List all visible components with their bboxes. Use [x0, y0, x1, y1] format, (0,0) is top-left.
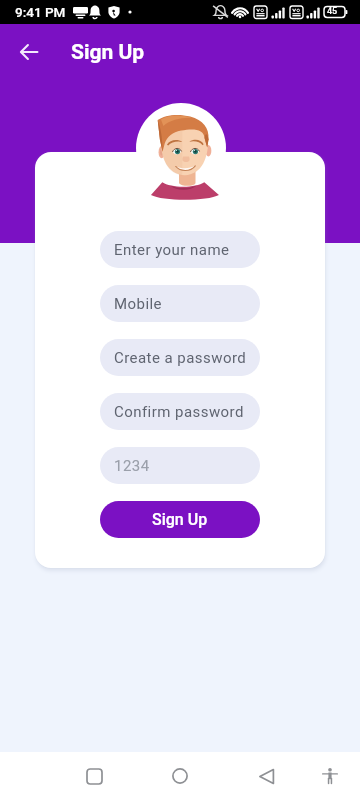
button[interactable]: Enter your name	[100, 231, 260, 268]
button[interactable]: Sign Up	[100, 501, 260, 538]
button[interactable]: Accessibility	[306, 752, 354, 800]
staticText: Enter your name	[114, 241, 230, 259]
button[interactable]: Confirm password	[100, 393, 260, 430]
staticText: 1234	[114, 457, 150, 475]
staticText: Sign Up	[152, 510, 208, 529]
button[interactable]: Home	[156, 752, 204, 800]
staticText: Confirm password	[114, 403, 244, 421]
button[interactable]: Recent apps	[70, 752, 118, 800]
button[interactable]: Back	[242, 752, 290, 800]
staticText: Sign Up	[71, 40, 145, 65]
staticText: 45	[327, 6, 338, 17]
button[interactable]: Back	[11, 34, 47, 70]
button[interactable]: Create a password	[100, 339, 260, 376]
staticText: 9:41 PM	[15, 4, 66, 20]
staticText: Mobile	[114, 295, 163, 313]
staticText: Create a password	[114, 349, 247, 367]
button[interactable]: Mobile	[100, 285, 260, 322]
button[interactable]: 1234	[100, 447, 260, 484]
